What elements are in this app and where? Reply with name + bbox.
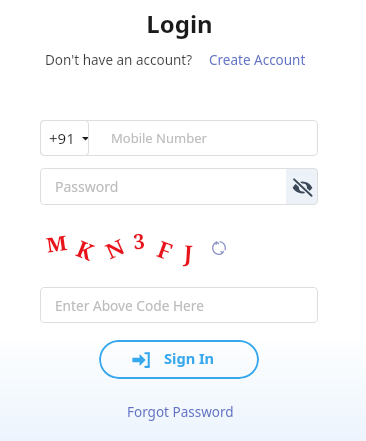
staticText: Enter Above Code Here bbox=[55, 296, 204, 315]
staticText: +91 bbox=[49, 128, 75, 148]
staticText: F bbox=[153, 232, 177, 266]
staticText: 3 bbox=[132, 227, 146, 256]
staticText: Login bbox=[146, 7, 213, 40]
staticText: N bbox=[101, 231, 129, 265]
staticText: Sign In bbox=[164, 348, 215, 368]
staticText: Password bbox=[55, 177, 286, 196]
button[interactable]: Toggle password visibility bbox=[286, 168, 318, 205]
staticText: Create Account bbox=[209, 51, 306, 69]
button[interactable]: Create Account bbox=[209, 51, 306, 69]
button[interactable]: Sign In bbox=[99, 340, 259, 379]
button[interactable]: Refresh captcha bbox=[208, 237, 229, 258]
staticText: J bbox=[183, 238, 194, 269]
staticText: Don't have an account? bbox=[45, 51, 193, 69]
staticText: K bbox=[72, 232, 99, 267]
button[interactable]: +91 bbox=[40, 120, 89, 156]
staticText: Forgot Password bbox=[127, 403, 234, 421]
button[interactable]: Forgot Password bbox=[127, 403, 234, 421]
staticText: M bbox=[44, 228, 69, 258]
staticText: Mobile Number bbox=[111, 129, 207, 147]
